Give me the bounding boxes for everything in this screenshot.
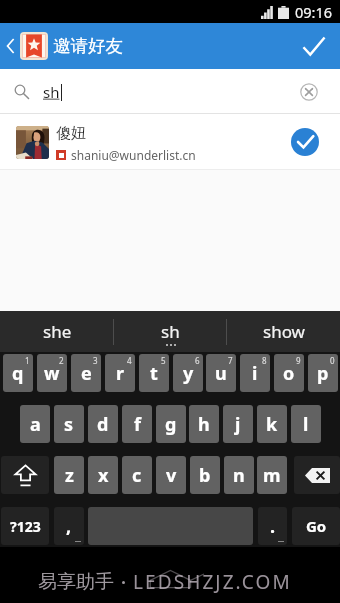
button[interactable]: z bbox=[54, 456, 84, 494]
button[interactable]: t bbox=[139, 354, 169, 392]
staticText: 傻妞 bbox=[56, 124, 86, 143]
button[interactable]: c bbox=[122, 456, 152, 494]
button[interactable]: n bbox=[224, 456, 254, 494]
button[interactable]: o bbox=[274, 354, 304, 392]
button[interactable]: w bbox=[37, 354, 67, 392]
staticText: i bbox=[252, 361, 258, 386]
staticText: sh bbox=[161, 320, 180, 343]
staticText: m bbox=[263, 463, 281, 488]
button[interactable]: a bbox=[20, 405, 50, 443]
button[interactable]: x bbox=[88, 456, 118, 494]
button[interactable]: q bbox=[3, 354, 33, 392]
button[interactable]: sh bbox=[114, 311, 227, 352]
staticText: . bbox=[270, 514, 276, 539]
staticText: e bbox=[81, 361, 92, 386]
staticText: shaniu@wunderlist.cn bbox=[71, 147, 196, 163]
button[interactable]: b bbox=[190, 456, 220, 494]
staticText: Go bbox=[306, 516, 327, 536]
staticText: show bbox=[263, 320, 305, 343]
staticText: q bbox=[12, 361, 24, 386]
staticText: b bbox=[199, 463, 211, 488]
staticText: l bbox=[303, 412, 309, 437]
button[interactable]: . bbox=[258, 507, 287, 545]
button[interactable]: p bbox=[308, 354, 338, 392]
button[interactable]: show bbox=[227, 311, 340, 352]
staticText: 2 bbox=[59, 355, 64, 366]
staticText: k bbox=[266, 412, 278, 437]
staticText: 1 bbox=[25, 355, 30, 366]
staticText: ?123 bbox=[10, 517, 41, 536]
button[interactable]: r bbox=[105, 354, 135, 392]
button[interactable]: f bbox=[122, 405, 152, 443]
button[interactable]: u bbox=[206, 354, 236, 392]
staticText: w bbox=[44, 361, 60, 386]
staticText: 09:16 bbox=[295, 2, 333, 22]
staticText: z bbox=[65, 463, 74, 488]
button[interactable]: v bbox=[156, 456, 186, 494]
staticText: u bbox=[215, 361, 227, 386]
button[interactable]: Shift bbox=[1, 456, 49, 494]
staticText: s bbox=[64, 412, 74, 437]
staticText: o bbox=[283, 361, 295, 386]
button[interactable]: Go bbox=[292, 507, 340, 545]
staticText: 5 bbox=[161, 355, 166, 366]
button[interactable]: s bbox=[54, 405, 84, 443]
staticText: v bbox=[166, 463, 177, 488]
staticText: y bbox=[183, 361, 194, 386]
button[interactable]: j bbox=[223, 405, 253, 443]
staticText: f bbox=[134, 412, 141, 437]
staticText: LEDSHZJZ.COM bbox=[133, 569, 292, 595]
button[interactable]: Selected bbox=[291, 128, 319, 156]
staticText: 7 bbox=[228, 355, 233, 366]
staticText: h bbox=[198, 412, 210, 437]
staticText: 6 bbox=[195, 355, 200, 366]
button[interactable]: i bbox=[240, 354, 270, 392]
button[interactable]: y bbox=[173, 354, 203, 392]
staticText: sh bbox=[43, 82, 60, 102]
staticText: she bbox=[43, 320, 72, 343]
staticText: 易享助手 bbox=[38, 570, 114, 594]
staticText: d bbox=[97, 412, 109, 437]
button[interactable]: ?123 bbox=[1, 507, 49, 545]
button[interactable]: she bbox=[0, 311, 114, 352]
staticText: 0 bbox=[330, 355, 335, 366]
button[interactable]: d bbox=[88, 405, 118, 443]
staticText: 3 bbox=[93, 355, 98, 366]
staticText: r bbox=[116, 361, 125, 386]
staticText: t bbox=[150, 361, 158, 386]
button[interactable]: Clear text bbox=[293, 76, 325, 108]
staticText: g bbox=[165, 412, 177, 437]
button[interactable]: m bbox=[257, 456, 287, 494]
button[interactable]: Back bbox=[0, 23, 20, 69]
staticText: , bbox=[66, 514, 72, 539]
button[interactable]: 傻妞 bbox=[0, 114, 340, 170]
staticText: 8 bbox=[262, 355, 267, 366]
staticText: a bbox=[30, 412, 41, 437]
staticText: j bbox=[235, 412, 241, 437]
button[interactable]: k bbox=[257, 405, 287, 443]
button[interactable]: h bbox=[189, 405, 219, 443]
staticText: 邀请好友 bbox=[53, 35, 123, 57]
staticText: c bbox=[132, 463, 142, 488]
staticText: 9 bbox=[296, 355, 301, 366]
staticText: n bbox=[233, 463, 245, 488]
staticText: p bbox=[317, 361, 329, 386]
staticText: x bbox=[98, 463, 109, 488]
button[interactable]: Confirm bbox=[292, 23, 340, 69]
button[interactable]: g bbox=[156, 405, 186, 443]
staticText: 4 bbox=[127, 355, 132, 366]
button[interactable]: l bbox=[291, 405, 321, 443]
button[interactable]: , bbox=[54, 507, 84, 545]
button[interactable]: Backspace bbox=[294, 456, 340, 494]
button[interactable]: e bbox=[71, 354, 101, 392]
